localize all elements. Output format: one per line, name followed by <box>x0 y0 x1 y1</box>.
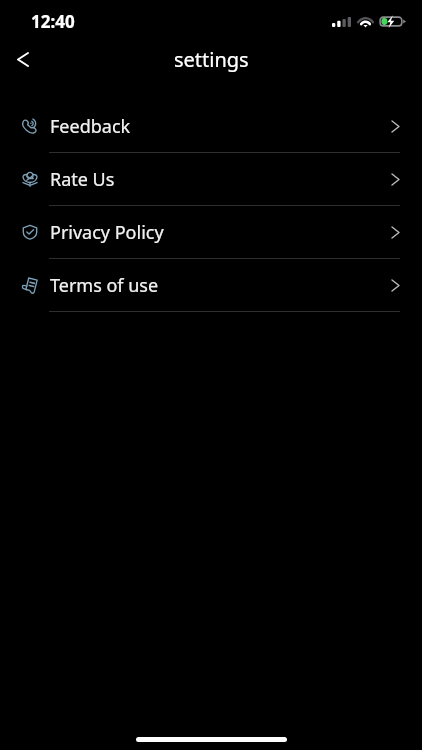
button[interactable]: Rate Us <box>0 153 422 205</box>
staticText: settings <box>174 46 249 73</box>
button[interactable]: Privacy Policy <box>0 206 422 258</box>
staticText: Feedback <box>50 114 131 139</box>
staticText: Terms of use <box>50 273 159 298</box>
button[interactable]: Feedback <box>0 100 422 152</box>
staticText: Rate Us <box>50 167 115 192</box>
staticText: 12:40 <box>31 10 75 33</box>
button[interactable]: Terms of use <box>0 259 422 311</box>
button[interactable]: Back <box>5 41 41 77</box>
staticText: Privacy Policy <box>50 220 164 245</box>
